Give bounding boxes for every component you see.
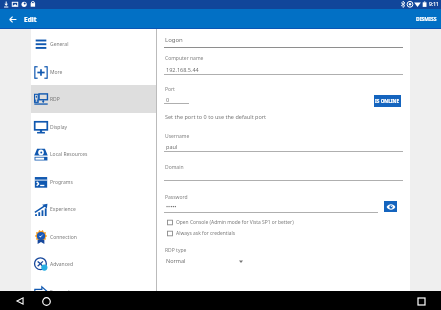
button[interactable]: Programs (31, 168, 156, 196)
staticText: Password (165, 194, 188, 201)
staticText: More (50, 69, 63, 76)
staticText: DISMISS (416, 16, 437, 23)
staticText: Open Console (Admin mode for Vista SP1 o… (176, 219, 294, 226)
staticText: Computer name (165, 55, 204, 62)
button[interactable]: Recent apps (414, 294, 428, 308)
staticText: Connection (50, 234, 77, 241)
button[interactable]: Back (5, 11, 21, 27)
staticText: paul (166, 143, 178, 150)
staticText: Edit (24, 15, 37, 24)
staticText: Forward (50, 289, 70, 296)
staticText: RDP type (165, 247, 187, 254)
button[interactable]: Open Console (Admin mode for Vista SP1 o… (164, 217, 294, 227)
button[interactable]: Local Resources (31, 140, 156, 168)
button[interactable]: Show password (384, 201, 397, 212)
button[interactable]: Connection (31, 223, 156, 251)
staticText: Programs (50, 179, 73, 186)
button[interactable]: DISMISS (412, 11, 441, 27)
staticText: RDP (50, 96, 60, 103)
button[interactable]: General (31, 30, 156, 58)
button[interactable]: Back (13, 294, 27, 308)
staticText: 9:11 (429, 1, 439, 8)
staticText: Advanced (50, 261, 74, 268)
button[interactable]: Advanced (31, 250, 156, 278)
staticText: Experience (50, 206, 76, 213)
button[interactable]: RDP (31, 85, 156, 113)
staticText: Logon (165, 36, 183, 44)
staticText: ••••• (166, 203, 177, 210)
staticText: Domain (165, 164, 184, 171)
staticText: Display (50, 124, 68, 131)
staticText: Set the port to 0 to use the default por… (165, 113, 267, 120)
button[interactable]: Forward (31, 278, 156, 306)
button[interactable]: More (31, 58, 156, 86)
staticText: 192.168.5.44 (166, 66, 199, 73)
staticText: 0 (166, 96, 170, 103)
staticText: IS ONLINE (375, 98, 400, 104)
staticText: Port (165, 86, 175, 93)
button[interactable]: Home (39, 294, 53, 308)
staticText: Username (165, 133, 190, 140)
staticText: Always ask for credentials (176, 230, 236, 237)
button[interactable]: IS ONLINE (374, 95, 401, 107)
staticText: Normal (166, 257, 186, 264)
staticText: Local Resources (50, 151, 88, 158)
button[interactable]: Display (31, 113, 156, 141)
button[interactable]: Experience (31, 195, 156, 223)
button[interactable]: Always ask for credentials (164, 228, 236, 238)
staticText: General (50, 41, 69, 48)
button[interactable]: Normal (164, 255, 244, 269)
